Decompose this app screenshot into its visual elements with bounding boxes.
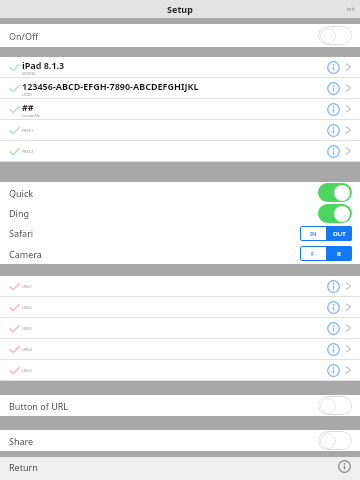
staticText: Quick: [9, 187, 34, 199]
staticText: Return: [9, 461, 38, 473]
button[interactable]: Safari: [0, 223, 360, 243]
staticText: On/Off: [9, 30, 39, 42]
other: Info: [327, 103, 340, 116]
staticText: IN: [310, 230, 317, 238]
button[interactable]: init: [347, 6, 355, 13]
staticText: init: [347, 6, 355, 13]
button[interactable]: Quick: [0, 182, 360, 203]
button[interactable]: URL3: [0, 318, 360, 338]
button[interactable]: URL5: [0, 360, 360, 380]
button[interactable]: [318, 26, 352, 45]
staticText: OUT: [333, 230, 346, 238]
button[interactable]: On/Off: [0, 24, 360, 47]
button[interactable]: [318, 183, 352, 202]
staticText: Ding: [9, 207, 29, 219]
staticText: Camera: [9, 248, 42, 260]
other: Info: [327, 322, 340, 335]
staticText: F: [311, 250, 315, 258]
staticText: LocateMe: [22, 113, 41, 118]
other: Info: [327, 82, 340, 95]
staticText: Share: [9, 435, 34, 447]
staticText: UDID: [22, 92, 33, 97]
staticText: ##: [22, 101, 34, 113]
other: Info: [327, 301, 340, 314]
button[interactable]: Camera: [0, 243, 360, 264]
staticText: URL1: [22, 284, 32, 289]
staticText: R: [337, 250, 341, 258]
button[interactable]: [318, 396, 352, 415]
button[interactable]: [318, 204, 352, 223]
staticText: Setup: [0, 3, 360, 15]
other: Info: [327, 280, 340, 293]
button[interactable]: FREE1: [0, 120, 360, 140]
other: Info: [338, 460, 351, 473]
button[interactable]: Ding: [0, 203, 360, 223]
staticText: URL4: [22, 347, 32, 352]
button[interactable]: [318, 431, 352, 450]
staticText: FREE2: [22, 149, 34, 154]
staticText: iPad 8.1.3: [22, 59, 65, 71]
button[interactable]: ##: [0, 99, 360, 119]
staticText: URL2: [22, 305, 32, 310]
other: Info: [327, 124, 340, 137]
other: Info: [327, 61, 340, 74]
button[interactable]: iPad 8.1.3: [0, 57, 360, 77]
staticText: 123456-ABCD-EFGH-7890-ABCDEFGHIJKL: [22, 80, 199, 92]
staticText: URL5: [22, 368, 32, 373]
other: Info: [327, 343, 340, 356]
staticText: URL3: [22, 326, 32, 331]
button[interactable]: URL1: [0, 276, 360, 296]
staticText: Safari: [9, 227, 34, 239]
button[interactable]: Button of URL: [0, 395, 360, 416]
staticText: MODEL: [22, 71, 36, 76]
button[interactable]: F: [300, 246, 352, 261]
other: Info: [327, 145, 340, 158]
button[interactable]: Share: [0, 430, 360, 451]
staticText: FREE1: [22, 128, 34, 133]
button[interactable]: IN: [300, 226, 352, 241]
other: Info: [327, 364, 340, 377]
button[interactable]: URL4: [0, 339, 360, 359]
button[interactable]: Return: [0, 457, 360, 476]
button[interactable]: FREE2: [0, 141, 360, 161]
button[interactable]: URL2: [0, 297, 360, 317]
button[interactable]: 123456-ABCD-EFGH-7890-ABCDEFGHIJKL: [0, 78, 360, 98]
staticText: Button of URL: [9, 400, 69, 412]
